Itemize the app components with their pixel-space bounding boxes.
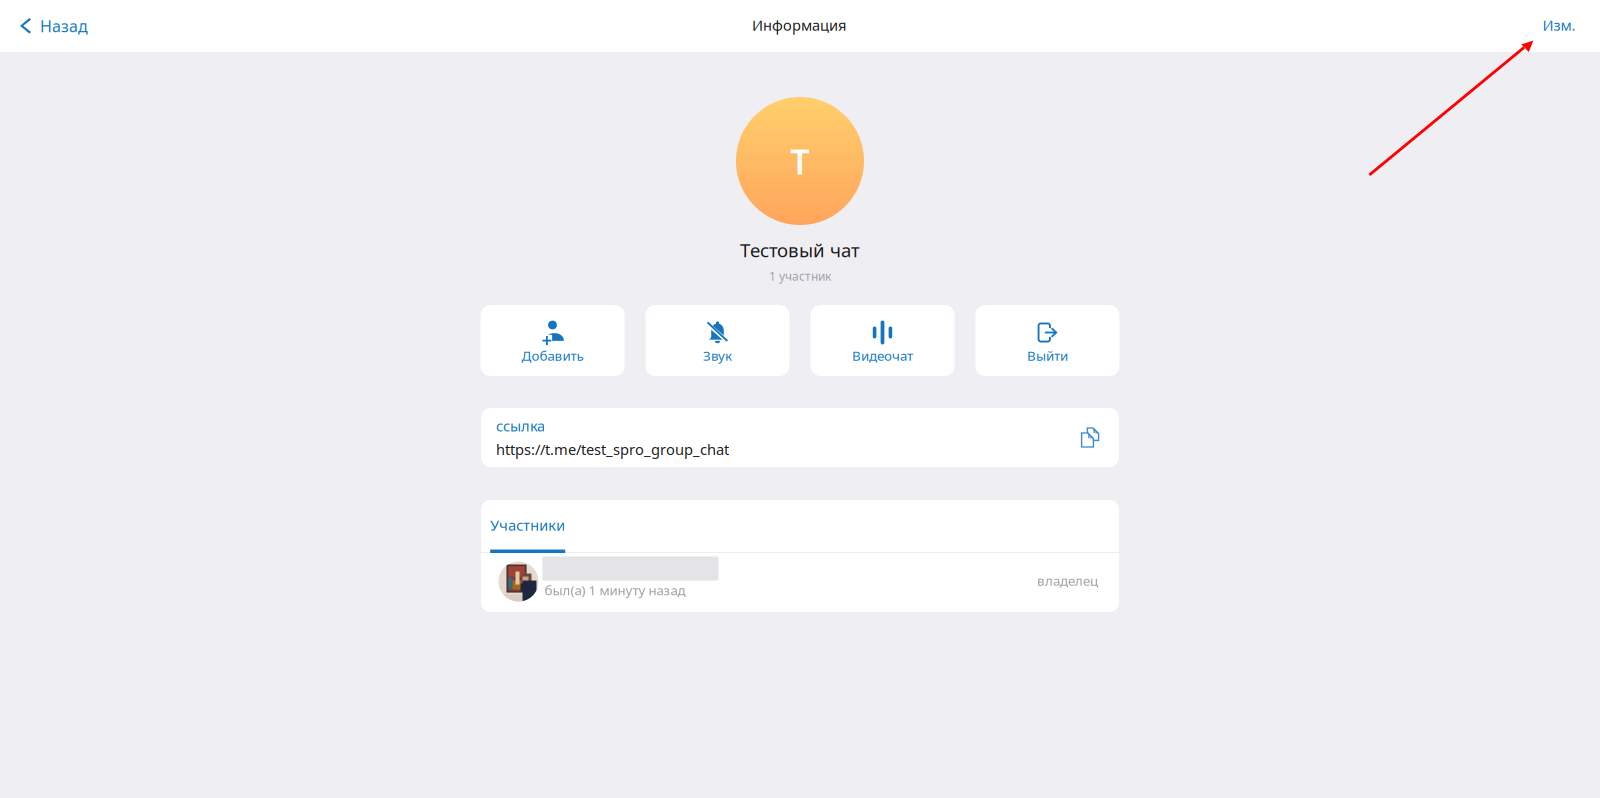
staticText: Выйти (1027, 347, 1068, 364)
button[interactable]: Видеочат (810, 305, 954, 376)
staticText: владелец (1037, 572, 1098, 589)
staticText: Изм. (1542, 15, 1575, 35)
button[interactable]: Назад (2, 0, 102, 52)
staticText: 1 участник (769, 268, 831, 284)
staticText: Информация (752, 15, 846, 35)
button[interactable]: Участники (490, 500, 565, 553)
staticText: Т (790, 138, 810, 184)
staticText: был(а) 1 минуту назад (544, 581, 685, 599)
button[interactable]: Выйти (975, 305, 1119, 376)
staticText: Добавить (521, 347, 583, 364)
staticText: Тестовый чат (740, 238, 860, 262)
button[interactable]: ссылка (481, 408, 1119, 467)
button[interactable]: был(а) 1 минуту назад (481, 553, 1119, 612)
button[interactable]: Звук (645, 305, 789, 376)
button[interactable]: Изм. (1526, 0, 1591, 51)
button[interactable]: Добавить (480, 305, 624, 376)
staticText: Назад (40, 15, 88, 37)
staticText: Звук (703, 347, 732, 364)
staticText: https://t.me/test_spro_group_chat (496, 439, 729, 459)
staticText: Видеочат (852, 347, 913, 364)
staticText: Участники (490, 515, 565, 535)
staticText: ссылка (496, 416, 545, 435)
